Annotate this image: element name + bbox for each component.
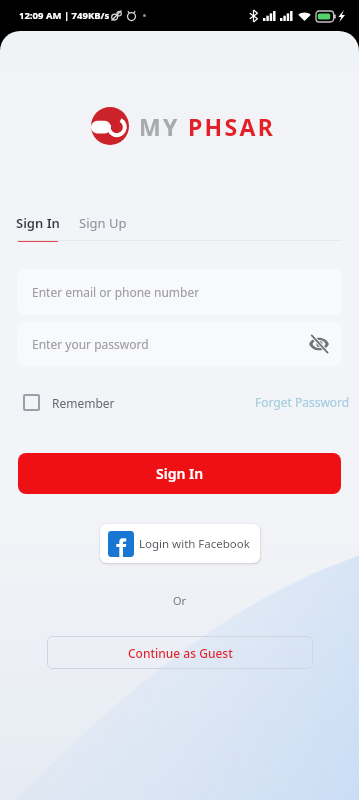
staticText: MY PHSAR [139, 111, 276, 142]
button[interactable]: Forget Password [255, 394, 350, 410]
button[interactable]: Sign Up [78, 214, 128, 232]
staticText: 12:09 AM | 749KB/s [19, 9, 110, 22]
staticText: Sign In [156, 464, 204, 483]
button[interactable]: Continue as Guest [47, 636, 313, 669]
staticText: Continue as Guest [128, 645, 233, 661]
button[interactable]: Login with Facebook [100, 524, 260, 563]
button[interactable]: Remember [23, 394, 115, 411]
staticText: Enter email or phone number [32, 284, 200, 300]
button[interactable]: Sign In [18, 453, 341, 494]
staticText: Or [0, 593, 359, 608]
button[interactable]: Sign In [16, 214, 60, 242]
staticText: Enter your password [32, 336, 149, 352]
staticText: Sign In [16, 214, 60, 232]
button[interactable]: Enter your password [17, 322, 342, 366]
staticText: Login with Facebook [139, 536, 250, 552]
button[interactable]: Show password [304, 329, 334, 359]
staticText: Remember [52, 395, 115, 411]
button[interactable]: Enter email or phone number [17, 269, 342, 315]
staticText: Sign Up [79, 214, 127, 232]
